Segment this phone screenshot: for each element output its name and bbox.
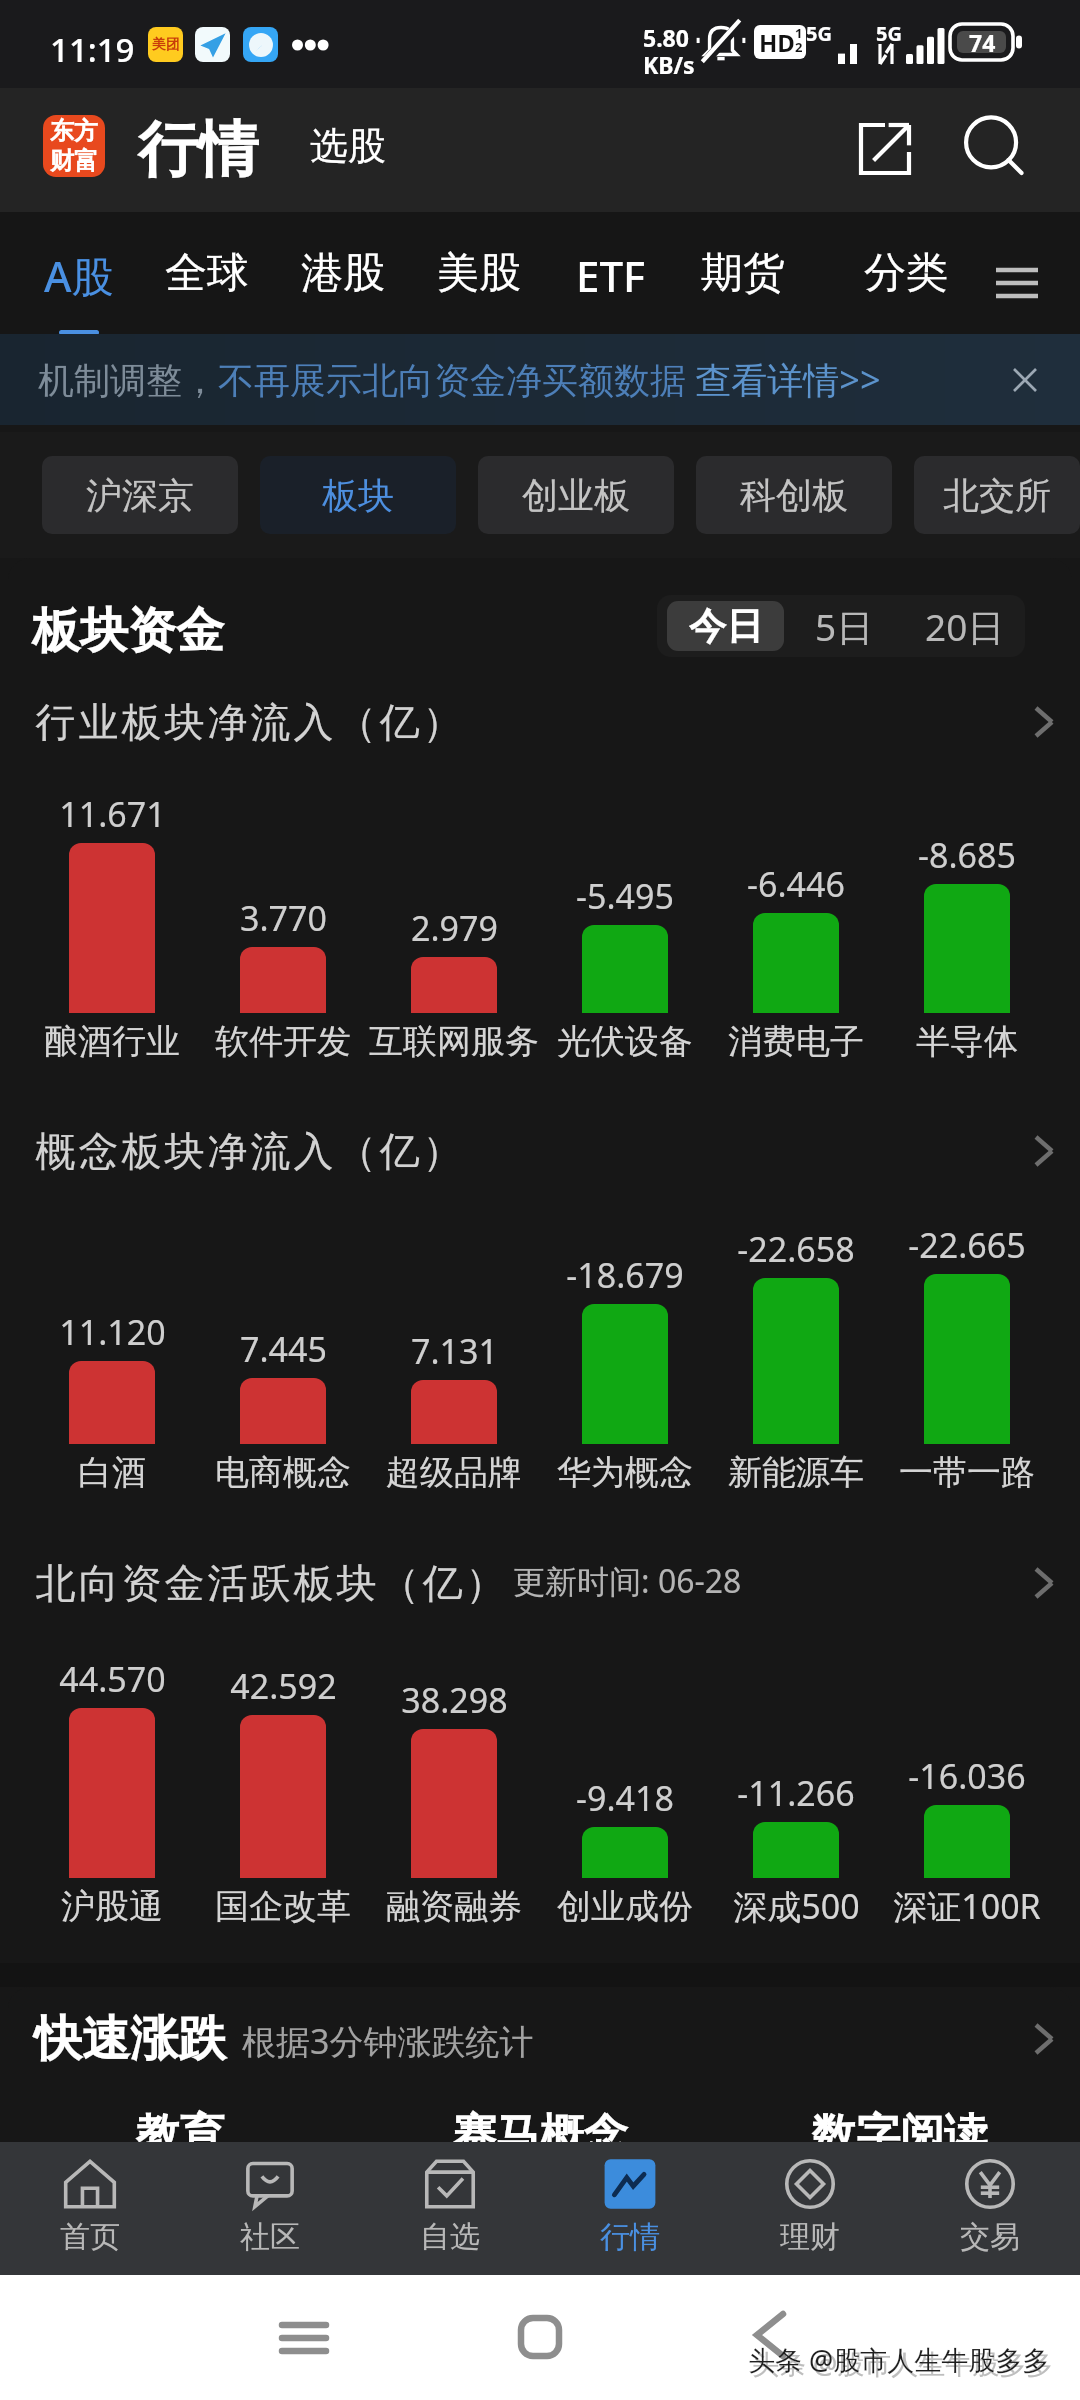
staticText: HD	[759, 26, 795, 59]
button[interactable]: 20日	[904, 595, 1025, 657]
button[interactable]: 教育	[60, 2105, 300, 2165]
staticText: 创业板	[522, 473, 630, 518]
button[interactable]: 板块	[260, 456, 456, 534]
staticText: 沪股通	[61, 1885, 163, 1928]
staticText: 首页	[60, 2218, 120, 2256]
staticText: A股	[44, 247, 114, 304]
button[interactable]: More categories	[980, 246, 1054, 320]
staticText: 更新时间: 06-28	[513, 1559, 742, 1603]
button[interactable]: 创业板	[478, 456, 674, 534]
staticText: 财富	[50, 146, 98, 176]
button[interactable]: 交易	[900, 2142, 1080, 2275]
staticText: 1	[795, 25, 803, 42]
staticText: 沪深京	[86, 473, 194, 518]
staticText: 分类	[864, 247, 948, 300]
button[interactable]: Home	[500, 2297, 580, 2377]
button[interactable]: 数字阅读	[780, 2105, 1020, 2165]
staticText: 11:19	[50, 27, 135, 72]
button[interactable]: Recent apps	[264, 2298, 344, 2378]
staticText: 5日	[815, 601, 874, 652]
staticText: 美团	[152, 36, 180, 54]
staticText: 电商概念	[215, 1451, 351, 1494]
staticText: 5.80	[643, 22, 689, 53]
staticText: 74	[969, 27, 996, 58]
button[interactable]: 期货	[681, 212, 805, 338]
staticText: 半导体	[916, 1020, 1018, 1063]
staticText: 44.570	[59, 1656, 166, 1702]
staticText: 选股	[310, 122, 386, 170]
staticText: 根据3分钟涨跌统计	[242, 2018, 534, 2064]
button[interactable]: 北向资金活跃板块（亿）	[8, 1547, 1072, 1619]
staticText: 3.770	[240, 895, 327, 941]
staticText: 38.298	[401, 1677, 508, 1723]
button[interactable]: 5日	[784, 595, 904, 657]
button[interactable]: 理财	[720, 2142, 900, 2275]
button[interactable]: Back	[730, 2295, 810, 2375]
staticText: 教育	[136, 2108, 224, 2163]
staticText: KB/s	[643, 49, 695, 80]
staticText: 板块	[322, 473, 394, 518]
button[interactable]: 北交所	[914, 456, 1080, 534]
staticText: 7.131	[411, 1328, 498, 1374]
button[interactable]: 概念板块净流入（亿）	[8, 1115, 1072, 1187]
button[interactable]: 行情	[540, 2142, 720, 2275]
staticText: -8.685	[918, 832, 1016, 878]
button[interactable]: East Money logo	[43, 115, 105, 177]
staticText: 美股	[437, 247, 521, 300]
button[interactable]: Search	[958, 108, 1040, 190]
staticText: 酿酒行业	[44, 1020, 180, 1063]
staticText: 社区	[240, 2218, 300, 2256]
staticText: 光伏设备	[557, 1020, 693, 1063]
staticText: 一带一路	[899, 1451, 1035, 1494]
staticText: 期货	[701, 247, 785, 300]
button[interactable]: 分类	[844, 212, 968, 338]
button[interactable]: 赛马概念	[420, 2105, 660, 2165]
staticText: 5G	[876, 20, 902, 47]
staticText: 新能源车	[728, 1451, 864, 1494]
staticText: 11.671	[59, 791, 166, 837]
staticText: 全球	[165, 247, 249, 300]
staticText: 港股	[301, 247, 385, 300]
button[interactable]: A股	[17, 212, 141, 338]
button[interactable]: Share	[845, 109, 925, 189]
staticText: 科创板	[740, 473, 848, 518]
staticText: 深成500	[733, 1883, 860, 1929]
button[interactable]: ETF	[549, 212, 673, 338]
staticText: 消费电子	[728, 1020, 864, 1063]
staticText: 2.979	[411, 905, 498, 951]
staticText: -22.665	[908, 1222, 1026, 1268]
staticText: 5G	[806, 20, 832, 47]
staticText: -18.679	[566, 1252, 684, 1298]
button[interactable]: 首页	[0, 2142, 180, 2275]
staticText: 20日	[925, 601, 1005, 652]
button[interactable]: 行业板块净流入（亿）	[8, 686, 1072, 758]
staticText: 深证100R	[893, 1883, 1041, 1929]
staticText: 行情	[600, 2218, 660, 2256]
staticText: -5.495	[576, 873, 674, 919]
staticText: ETF	[576, 247, 646, 304]
button[interactable]: 快速涨跌	[8, 1996, 1072, 2082]
button[interactable]: 今日	[667, 601, 784, 651]
button[interactable]: 沪深京	[42, 456, 238, 534]
button[interactable]: 科创板	[696, 456, 892, 534]
staticText: 融资融券	[386, 1885, 522, 1928]
staticText: 机制调整，不再展示北向资金净买额数据 查看详情>>	[38, 355, 881, 404]
staticText: 理财	[780, 2218, 840, 2256]
staticText: 42.592	[230, 1663, 337, 1709]
button[interactable]: 美股	[417, 212, 541, 338]
button[interactable]: 港股	[281, 212, 405, 338]
button[interactable]: Close notice	[990, 345, 1060, 415]
button[interactable]: 自选	[360, 2142, 540, 2275]
staticText: 行情	[138, 112, 258, 188]
staticText: 2	[795, 38, 803, 54]
staticText: 华为概念	[557, 1451, 693, 1494]
staticText: -6.446	[747, 861, 845, 907]
staticText: 头条 @股市人生牛股多多	[748, 2341, 1050, 2378]
button[interactable]: 社区	[180, 2142, 360, 2275]
staticText: 超级品牌	[386, 1451, 522, 1494]
staticText: 数字阅读	[812, 2108, 988, 2163]
staticText: 软件开发	[215, 1020, 351, 1063]
staticText: 赛马概念	[452, 2108, 628, 2163]
button[interactable]: 选股	[310, 122, 386, 170]
button[interactable]: 全球	[145, 212, 269, 338]
